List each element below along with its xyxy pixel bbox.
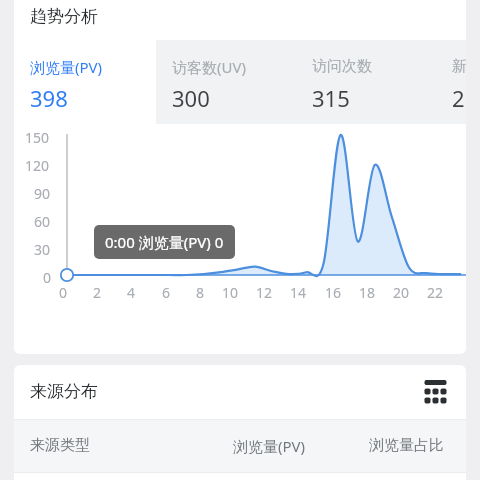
staticText: 访客数(UV) xyxy=(172,57,246,77)
staticText: 浏览量(PV) xyxy=(30,57,103,77)
staticText: 398 xyxy=(30,83,68,113)
staticText: 来源类型 xyxy=(30,436,90,455)
staticText: 16 xyxy=(325,283,342,302)
button[interactable]: 新访 xyxy=(436,40,466,124)
staticText: 14 xyxy=(290,283,307,302)
button[interactable]: 访问次数 xyxy=(296,40,436,124)
staticText: 0:00 浏览量(PV) 0 xyxy=(105,232,224,252)
staticText: 30 xyxy=(34,240,51,259)
staticText: 来源分布 xyxy=(30,381,98,402)
staticText: 300 xyxy=(172,83,210,113)
button[interactable]: 访客数(UV) xyxy=(156,40,296,124)
staticText: 浏览量占比 xyxy=(369,436,444,455)
staticText: 10 xyxy=(222,283,239,302)
button[interactable]: 浏览量(PV) xyxy=(14,40,156,124)
staticText: 趋势分析 xyxy=(30,6,98,27)
staticText: 90 xyxy=(34,184,51,203)
staticText: 12 xyxy=(256,283,273,302)
staticText: 6 xyxy=(162,283,171,302)
staticText: 0 xyxy=(59,283,68,302)
staticText: 4 xyxy=(127,283,136,302)
other: Table view xyxy=(423,380,448,405)
staticText: 2 xyxy=(93,283,102,302)
staticText: 60 xyxy=(34,212,51,231)
staticText: 0 xyxy=(43,268,52,287)
staticText: 18 xyxy=(359,283,376,302)
button[interactable]: Table view xyxy=(418,375,452,409)
staticText: 315 xyxy=(312,83,350,113)
staticText: 120 xyxy=(25,156,50,175)
staticText: 8 xyxy=(196,283,205,302)
staticText: 2 xyxy=(452,83,465,113)
staticText: 访问次数 xyxy=(312,57,372,76)
staticText: 22 xyxy=(427,283,444,302)
staticText: 浏览量(PV) xyxy=(233,436,306,456)
staticText: 150 xyxy=(25,128,50,147)
staticText: 20 xyxy=(393,283,410,302)
staticText: 新访 xyxy=(452,57,466,76)
